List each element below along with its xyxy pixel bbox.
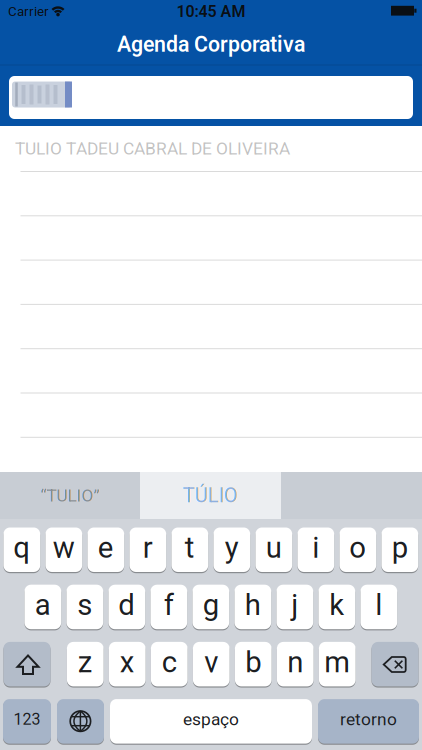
staticText: a [35,588,51,622]
button[interactable]: x [109,642,146,686]
button[interactable]: k [318,585,355,629]
button[interactable]: m [319,642,356,686]
button[interactable]: f [150,585,187,629]
staticText: k [329,588,344,622]
button[interactable]: d [108,585,145,629]
button[interactable]: g [192,585,229,629]
staticText: w [53,531,75,564]
button[interactable]: w [45,527,82,572]
button[interactable]: y [213,527,250,572]
staticText: d [118,588,135,622]
staticText: n [287,645,303,679]
staticText: l [375,588,382,622]
staticText: v [204,645,218,679]
staticText: TULIO TADEU CABRAL DE OLIVEIRA [15,139,290,158]
staticText: b [245,645,261,679]
staticText: h [245,588,261,622]
staticText: g [203,588,219,622]
button[interactable]: z [67,642,104,686]
button[interactable]: b [235,642,272,686]
staticText: m [324,645,350,679]
staticText: Carrier [8,4,49,19]
button[interactable]: e [87,527,124,572]
button[interactable]: Delete [371,642,418,686]
button[interactable]: Shift [3,642,50,686]
staticText: u [266,531,282,564]
staticText: 123 [13,710,40,728]
button[interactable]: 123 [3,699,51,744]
staticText: espaço [183,709,239,729]
staticText: q [13,531,30,564]
button[interactable]: p [381,527,418,572]
button[interactable]: r [129,527,166,572]
staticText: Agenda Corporativa [117,32,305,57]
button[interactable]: v [193,642,230,686]
button[interactable]: o [339,527,376,572]
staticText: o [349,531,366,564]
button[interactable]: s [66,585,103,629]
button[interactable]: a [24,585,61,629]
staticText: e [98,531,114,564]
staticText: t [185,531,195,564]
button[interactable]: h [234,585,271,629]
staticText: f [164,588,174,622]
staticText: s [77,588,92,622]
staticText: i [312,531,319,564]
staticText: z [78,645,93,679]
button[interactable]: i [297,527,334,572]
button[interactable]: “TULIO” [0,472,140,519]
staticText: 10:45 AM [176,2,245,21]
button[interactable]: TÚLIO [140,472,281,519]
button[interactable]: u [255,527,292,572]
button[interactable]: Search [9,76,413,119]
staticText: y [225,531,239,564]
button[interactable]: espaço [110,699,312,744]
button[interactable]: t [171,527,208,572]
staticText: p [392,531,408,564]
staticText: j [291,588,298,622]
staticText: x [120,645,135,679]
staticText: retorno [340,709,397,729]
staticText: r [143,531,153,564]
staticText: “TULIO” [40,486,99,505]
button[interactable]: TULIO TADEU CABRAL DE OLIVEIRA [0,126,422,171]
button[interactable]: j [276,585,313,629]
button[interactable]: q [3,527,40,572]
button[interactable]: n [277,642,314,686]
button[interactable]: c [151,642,188,686]
staticText: c [162,645,177,679]
button[interactable]: l [360,585,397,629]
staticText: TÚLIO [183,484,238,507]
button[interactable]: retorno [318,699,419,744]
button[interactable]: Next keyboard [57,699,104,744]
